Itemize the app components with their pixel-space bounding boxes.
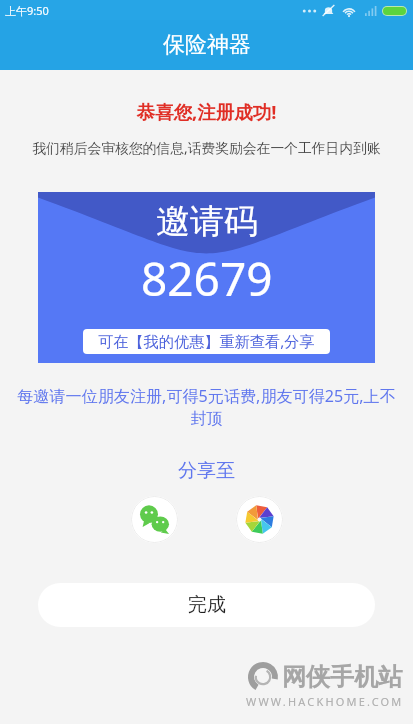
staticText: WWW.HACKHOME.COM (246, 694, 404, 709)
staticText: 网侠手机站 (282, 662, 402, 692)
button[interactable]: Share to Moments (236, 496, 283, 543)
staticText: 完成 (188, 593, 226, 617)
staticText: 恭喜您,注册成功! (0, 99, 413, 124)
button[interactable]: Share to WeChat (131, 496, 178, 543)
staticText: 分享至 (0, 459, 413, 483)
staticText: 保险神器 (163, 31, 251, 59)
staticText: 可在【我的优惠】重新查看,分享 (98, 331, 315, 352)
staticText: 我们稍后会审核您的信息,话费奖励会在一个工作日内到账 (0, 138, 413, 157)
staticText: 上午9:50 (5, 3, 49, 18)
staticText: 每邀请一位朋友注册,可得5元话费,朋友可得25元,上不封顶 (16, 385, 397, 428)
staticText: 82679 (141, 247, 273, 310)
button[interactable]: 可在【我的优惠】重新查看,分享 (83, 329, 330, 354)
button[interactable]: 完成 (38, 583, 375, 627)
staticText: 邀请码 (156, 200, 258, 243)
